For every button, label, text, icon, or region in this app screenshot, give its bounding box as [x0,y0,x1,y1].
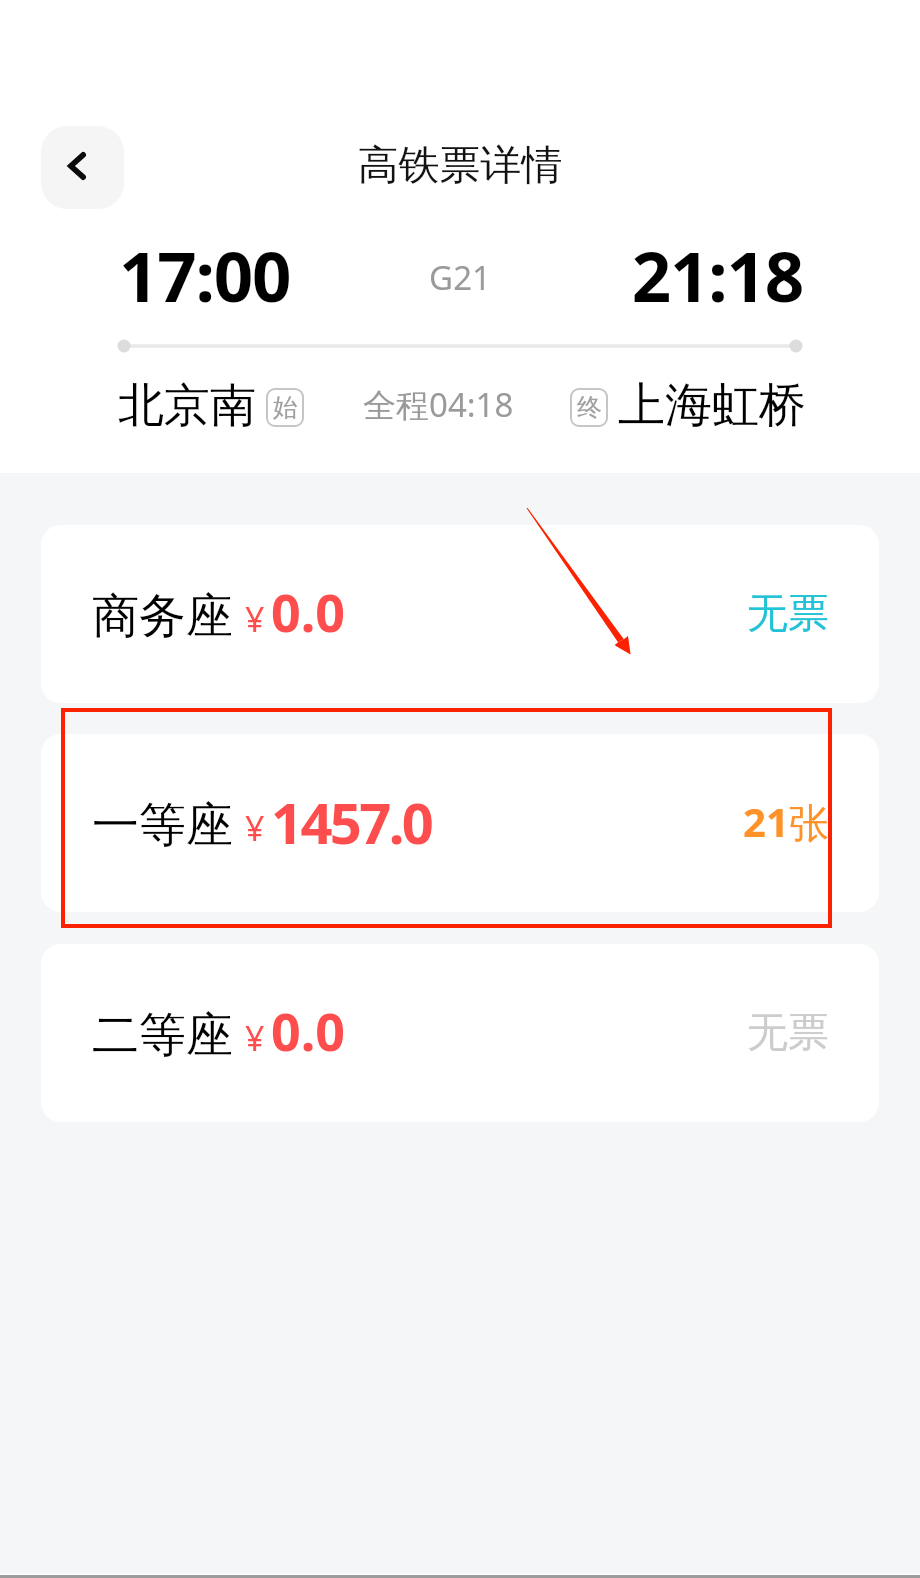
staticText: 终 [577,392,602,423]
staticText: 上海虹桥 [618,376,806,435]
staticText: 一等座 [92,796,233,855]
staticText: 始 [273,392,298,423]
staticText: 21:18 [0,228,803,322]
staticText: 17:00 [119,228,291,322]
staticText: 二等座 [92,1006,233,1065]
staticText: 商务座 [92,587,233,646]
staticText: 北京南 [118,377,256,435]
staticText: ¥ [245,1015,265,1061]
staticText: 全程04:18 [363,382,514,427]
staticText: 0.0 [271,995,346,1066]
button[interactable]: 一等座 [41,734,879,912]
staticText: 高铁票详情 [0,140,920,192]
staticText: ¥ [245,805,265,851]
button[interactable]: 商务座 [41,525,879,703]
staticText: 0.0 [271,576,346,647]
staticText: 无票 [747,1007,829,1059]
staticText: ¥ [245,596,265,642]
button[interactable]: 二等座 [41,944,879,1122]
staticText: 1457.0 [271,784,432,860]
button[interactable]: Back [41,126,124,209]
staticText: G21 [0,255,920,300]
staticText: 21张 [743,794,829,849]
staticText: 无票 [747,588,829,640]
